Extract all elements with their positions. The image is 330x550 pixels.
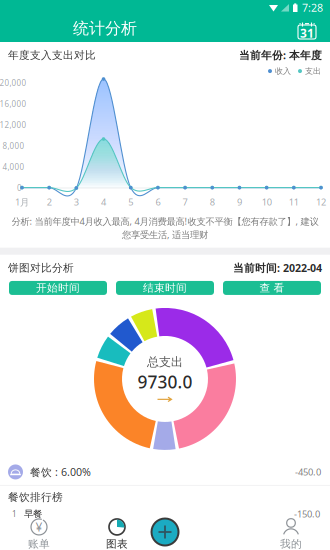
staticText: 10 — [262, 196, 272, 208]
staticText: 2 — [47, 196, 52, 208]
staticText: 8 — [210, 196, 215, 208]
button[interactable]: 结束时间 — [116, 281, 214, 295]
staticText: 当前年份: 本年度 — [239, 48, 322, 62]
staticText: 图表 — [106, 537, 128, 550]
button[interactable]: 餐饮 : 6.00% — [0, 459, 330, 485]
staticText: 查 看 — [259, 281, 284, 294]
staticText: 支出 — [305, 66, 321, 76]
button[interactable]: 选择日期 — [292, 17, 322, 45]
button[interactable]: 查 看 — [223, 281, 321, 295]
staticText: 年度支入支出对比 — [8, 48, 96, 62]
staticText: 3 — [74, 196, 79, 208]
button[interactable]: 图表 — [78, 518, 156, 550]
staticText: 结束时间 — [143, 281, 187, 294]
staticText: 分析: 当前年度中4月收入最高, 4月消费最高!收支不平衡【您有存款了】, 建议 — [11, 215, 318, 227]
staticText: 餐饮排行榜 — [8, 491, 63, 504]
staticText: 我的 — [280, 537, 302, 550]
staticText: 1月 — [15, 196, 29, 208]
staticText: 当前时间: 2022-04 — [233, 261, 322, 275]
staticText: 早餐 — [24, 508, 42, 520]
staticText: 11 — [289, 196, 299, 208]
staticText: 4,000 — [2, 162, 24, 172]
button[interactable]: 开始时间 — [9, 281, 107, 295]
staticText: 5 — [128, 196, 133, 208]
staticText: -450.0 — [295, 466, 321, 478]
staticText: 账单 — [28, 537, 50, 550]
button[interactable]: ¥ — [0, 518, 78, 550]
button[interactable]: 新增记账 — [149, 516, 181, 548]
staticText: 7 — [183, 196, 188, 208]
button[interactable]: 我的 — [252, 518, 330, 550]
staticText: 1 — [12, 509, 17, 519]
staticText: 统计分析 — [73, 19, 137, 38]
staticText: 收入 — [275, 66, 291, 76]
staticText: 0 — [17, 183, 22, 193]
staticText: 20,000 — [0, 78, 26, 88]
staticText: 开始时间 — [36, 281, 80, 294]
staticText: 31 — [300, 25, 314, 41]
staticText: 4 — [101, 196, 106, 208]
staticText: -150.0 — [294, 508, 320, 520]
staticText: 饼图对比分析 — [8, 261, 74, 274]
staticText: 7:28 — [302, 0, 323, 15]
staticText: 16,000 — [0, 99, 26, 109]
staticText: 9730.0 — [137, 370, 192, 393]
staticText: ¥ — [35, 519, 42, 535]
staticText: 餐饮 : 6.00% — [30, 465, 91, 479]
staticText: 9 — [237, 196, 242, 208]
staticText: 6 — [155, 196, 160, 208]
staticText: 总支出 — [147, 355, 183, 369]
staticText: 8,000 — [2, 141, 24, 151]
staticText: 您享受生活, 适当理财 — [122, 228, 208, 241]
staticText: 12,000 — [0, 120, 26, 130]
staticText: 12 — [316, 196, 326, 208]
